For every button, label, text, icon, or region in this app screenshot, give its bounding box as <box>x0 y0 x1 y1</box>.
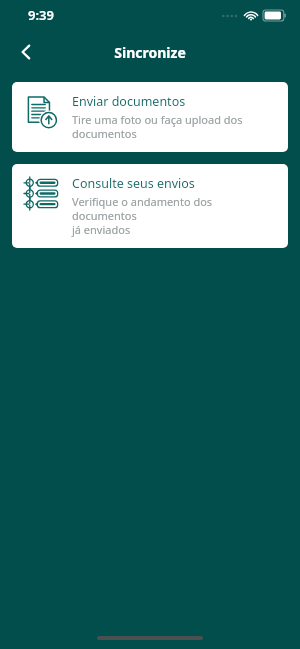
button[interactable]: Enviar documentos <box>12 82 288 152</box>
staticText: 9:39 <box>28 6 54 24</box>
staticText: Sincronize <box>114 43 186 62</box>
button[interactable]: Consulte seus envios <box>12 164 288 248</box>
button[interactable]: Back <box>6 32 46 72</box>
staticText: Verifique o andamento dos documentos já … <box>72 194 276 237</box>
staticText: Tire uma foto ou faça upload dos documen… <box>72 112 243 141</box>
staticText: Enviar documentos <box>72 93 186 110</box>
staticText: Consulte seus envios <box>72 175 195 192</box>
